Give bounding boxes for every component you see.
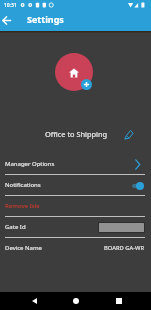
- staticText: Remove Isle: [5, 202, 40, 210]
- staticText: Notifications: [5, 181, 41, 189]
- button[interactable]: Notifications: [0, 175, 151, 196]
- button[interactable]: Site image: [55, 53, 93, 91]
- button[interactable]: Back: [23, 292, 45, 310]
- button[interactable]: Gate Id: [0, 217, 151, 238]
- button[interactable]: Recents: [108, 292, 130, 310]
- staticText: 10:31: [4, 2, 17, 9]
- button[interactable]: Edit name: [119, 125, 138, 144]
- button[interactable]: Back: [0, 10, 14, 30]
- button[interactable]: Device Name: [0, 238, 151, 258]
- button[interactable]: Manager Options: [0, 154, 151, 175]
- button[interactable]: Home: [65, 292, 87, 310]
- button[interactable]: Remove Isle: [0, 196, 151, 217]
- staticText: Manager Options: [5, 160, 55, 168]
- staticText: Settings: [27, 13, 64, 25]
- button[interactable]: Add image: [81, 79, 92, 90]
- staticText: Gate Id: [5, 223, 26, 231]
- staticText: Device Name: [5, 244, 42, 252]
- staticText: Office to Shipping: [45, 129, 108, 139]
- staticText: BOARD GA-WR: [104, 244, 145, 252]
